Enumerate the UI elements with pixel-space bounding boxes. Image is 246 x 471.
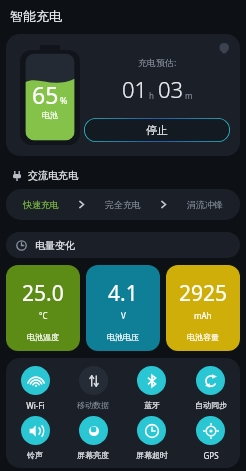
other: 移动数据 <box>79 366 108 395</box>
staticText: 快速充电 <box>23 199 59 210</box>
staticText: 移动数据 <box>77 400 109 410</box>
staticText: m <box>185 90 193 101</box>
staticText: 03 <box>158 74 184 104</box>
staticText: 电池容量 <box>187 332 219 342</box>
staticText: 电池温度 <box>27 332 59 342</box>
button[interactable]: Tips <box>217 41 233 57</box>
button[interactable]: 快速充电 <box>6 189 240 220</box>
button[interactable]: 2925 <box>166 265 240 351</box>
other: 铃声 <box>21 416 50 445</box>
staticText: 电量变化 <box>35 239 75 252</box>
staticText: % <box>60 94 68 106</box>
staticText: 电池 <box>42 110 58 120</box>
staticText: 涓流冲锋 <box>187 199 223 210</box>
staticText: 01 <box>122 74 148 104</box>
staticText: 交流电充电 <box>28 169 78 182</box>
button[interactable]: 电量变化 <box>6 232 240 258</box>
other: 自动同步 <box>196 366 225 395</box>
staticText: h <box>149 90 154 101</box>
staticText: 蓝牙 <box>144 400 160 410</box>
button[interactable]: 移动数据 <box>64 363 122 413</box>
staticText: 电池电压 <box>107 332 139 342</box>
staticText: mAh <box>194 310 212 321</box>
button[interactable]: 4.1 <box>86 265 160 351</box>
button[interactable]: 屏幕亮度 <box>64 413 122 463</box>
staticText: 停止 <box>146 123 168 137</box>
staticText: GPS <box>203 450 219 461</box>
staticText: Wi-Fi <box>26 400 45 411</box>
other: 屏幕超时 <box>137 416 166 445</box>
staticText: 25.0 <box>22 279 64 308</box>
staticText: °C <box>39 310 48 321</box>
staticText: 智能充电 <box>10 8 62 24</box>
staticText: 自动同步 <box>195 400 227 410</box>
staticText: 充电预估: <box>138 56 177 68</box>
other: GPS <box>196 416 225 445</box>
other: 蓝牙 <box>137 366 166 395</box>
button[interactable]: GPS <box>181 413 240 463</box>
button[interactable]: 停止 <box>84 118 230 142</box>
staticText: 65 <box>32 79 59 110</box>
staticText: 屏幕亮度 <box>77 450 109 460</box>
staticText: 4.1 <box>108 279 138 308</box>
other: 屏幕亮度 <box>79 416 108 445</box>
staticText: 2925 <box>179 279 228 308</box>
button[interactable]: 25.0 <box>6 265 80 351</box>
staticText: V <box>121 310 126 321</box>
staticText: 完全充电 <box>105 199 141 210</box>
button[interactable]: 蓝牙 <box>122 363 181 413</box>
button[interactable]: 自动同步 <box>181 363 240 413</box>
other: Wi-Fi <box>21 366 50 395</box>
button[interactable]: 屏幕超时 <box>122 413 181 463</box>
staticText: 屏幕超时 <box>136 450 168 460</box>
button[interactable]: Wi-Fi <box>6 363 64 413</box>
button[interactable]: 铃声 <box>6 413 64 463</box>
staticText: 铃声 <box>27 450 43 460</box>
